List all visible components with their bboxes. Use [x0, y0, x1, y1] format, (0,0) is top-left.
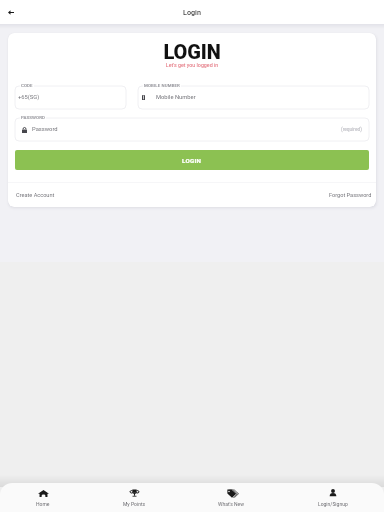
staticText: PASSWORD — [21, 115, 45, 120]
staticText: Login/Signup — [318, 501, 348, 507]
staticText: My Points — [123, 501, 146, 507]
button[interactable]: My Points — [123, 483, 146, 512]
button[interactable]: Home — [36, 483, 50, 512]
staticText: LOGIN — [182, 157, 202, 164]
staticText: (required) — [341, 127, 362, 133]
button[interactable]: Login/Signup — [318, 483, 348, 512]
button[interactable]: Back — [3, 4, 19, 20]
staticText: MOBILE NUMBER — [144, 83, 180, 88]
staticText: Home — [36, 501, 50, 507]
staticText: Mobile Number — [156, 94, 196, 101]
staticText: What's New — [218, 501, 245, 507]
button[interactable]: LOGIN — [15, 150, 369, 170]
staticText: LOGIN — [8, 40, 376, 63]
button[interactable]: Forgot Password — [329, 192, 372, 199]
staticText: Let's get you logged in — [8, 62, 376, 68]
staticText: +65(SG) — [18, 94, 40, 101]
staticText: Password — [32, 126, 58, 133]
staticText: CODE — [21, 83, 33, 88]
staticText: Login — [183, 8, 201, 16]
button[interactable]: What's New — [218, 483, 245, 512]
button[interactable]: Create Account — [16, 192, 55, 199]
